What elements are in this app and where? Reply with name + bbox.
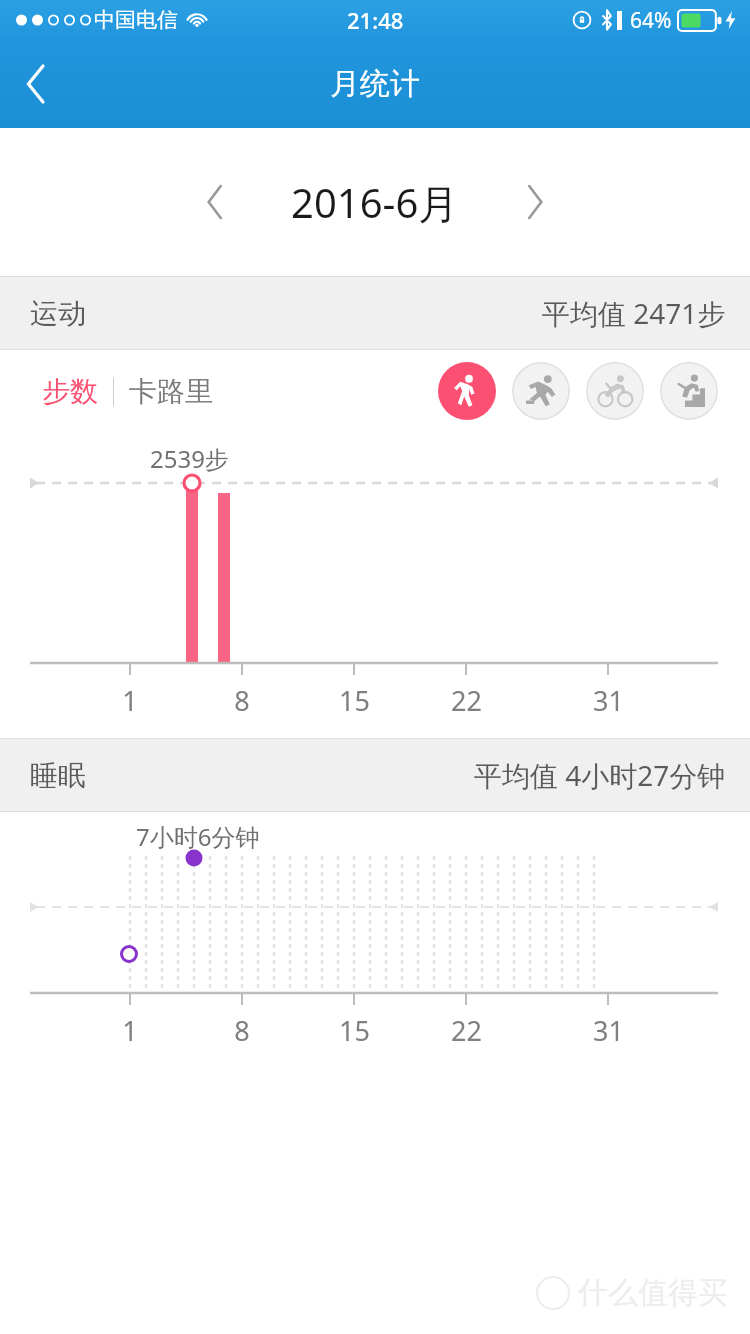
button[interactable]: Back — [0, 40, 72, 128]
staticText: 步数 — [42, 374, 98, 409]
staticText: 睡眠 — [30, 758, 86, 793]
button[interactable]: Next month — [500, 167, 570, 237]
staticText: 31 — [593, 682, 624, 719]
staticText: 8 — [234, 682, 250, 719]
staticText: 什么值得买 — [578, 1274, 728, 1312]
button[interactable]: Previous month — [180, 167, 250, 237]
staticText: 卡路里 — [129, 374, 213, 409]
button[interactable]: Cycling — [586, 362, 644, 420]
staticText: 15 — [339, 1012, 370, 1049]
staticText: 2016-6月 — [291, 175, 459, 230]
staticText: 22 — [451, 1012, 482, 1049]
button[interactable]: 卡路里 — [127, 368, 215, 415]
staticText: 1 — [122, 682, 138, 719]
staticText: 22 — [451, 682, 482, 719]
staticText: 月统计 — [330, 65, 420, 103]
staticText: 8 — [234, 1012, 250, 1049]
staticText: 1 — [122, 1012, 138, 1049]
staticText: 64% — [630, 6, 672, 35]
staticText: 平均值 2471步 — [542, 294, 726, 332]
button[interactable]: 2016-6月 — [250, 175, 500, 230]
button[interactable]: Walking — [438, 362, 496, 420]
staticText: 运动 — [30, 296, 86, 331]
staticText: 7小时6分钟 — [136, 820, 260, 853]
staticText: 31 — [593, 1012, 624, 1049]
staticText: 中国电信 — [94, 7, 178, 33]
button[interactable]: 步数 — [40, 368, 100, 415]
button[interactable]: Stairs — [660, 362, 718, 420]
staticText: 15 — [339, 682, 370, 719]
button[interactable]: Running — [512, 362, 570, 420]
staticText: 2539步 — [150, 442, 229, 475]
staticText: 21:48 — [347, 5, 404, 35]
staticText: 平均值 4小时27分钟 — [474, 756, 726, 794]
